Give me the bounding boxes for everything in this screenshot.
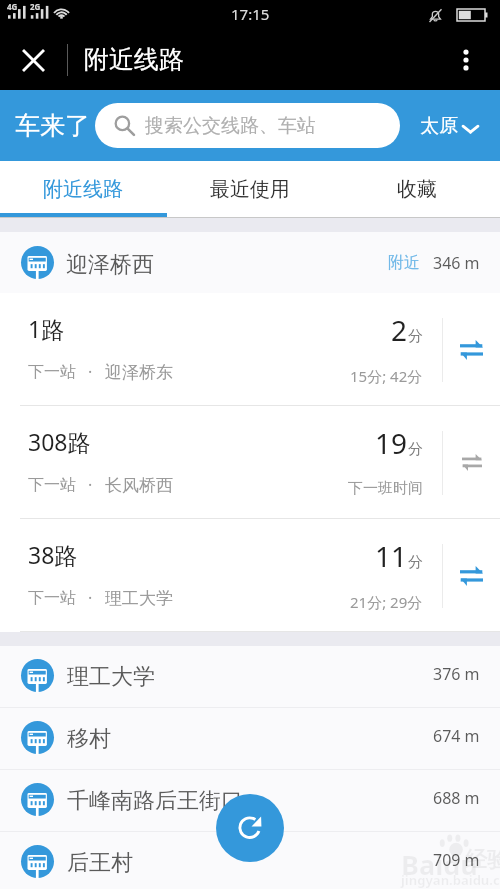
staticText: 太原 [420,114,458,138]
staticText: 后王村 [67,849,133,877]
staticText: 搜索公交线路、车站 [145,114,316,138]
staticText: 下一站 [28,362,76,382]
staticText: 709 m [433,849,480,871]
staticText: 308路 [28,426,91,457]
staticText: 2 [391,311,408,349]
button[interactable]: More options [444,38,488,82]
staticText: 理工大学 [67,663,155,691]
staticText: 376 m [433,663,480,685]
button[interactable]: 308路 [0,406,500,519]
button[interactable]: 38路 [0,519,500,632]
button[interactable]: 后王村 [0,832,500,889]
button[interactable]: 收藏 [333,161,500,217]
staticText: 长风桥西 [105,475,173,496]
button[interactable]: 1路 [0,293,500,406]
staticText: 收藏 [397,177,437,202]
staticText: 理工大学 [105,588,173,609]
staticText: 38路 [28,539,78,570]
staticText: 迎泽桥西 [66,251,154,279]
staticText: 11 [375,537,408,575]
button[interactable]: 附近线路 [0,161,166,217]
button[interactable]: 搜索公交线路、车站 [95,103,400,148]
button[interactable]: 迎泽桥西 [0,232,500,293]
button[interactable]: Close [11,38,56,83]
staticText: 车来了 [15,110,90,141]
staticText: 经验 [465,846,500,874]
staticText: 21分; 29分 [350,592,423,612]
staticText: 下一站 [28,588,76,608]
staticText: 分 [408,327,423,346]
staticText: 最近使用 [210,177,290,202]
staticText: 2G [30,1,41,12]
button[interactable]: Switch direction [443,406,500,519]
staticText: 迎泽桥东 [105,362,173,383]
staticText: · [88,587,93,609]
staticText: 下一班时间 [348,479,423,498]
button[interactable]: 理工大学 [0,646,500,708]
staticText: · [88,474,93,496]
button[interactable]: 千峰南路后王街口 [0,770,500,832]
staticText: 分 [408,440,423,459]
staticText: 19 [375,424,408,462]
staticText: 688 m [433,787,480,809]
staticText: 4G [7,1,18,12]
staticText: 346 m [433,252,480,274]
staticText: 附近 [388,253,420,273]
button[interactable]: Switch direction [443,293,500,406]
staticText: 15分; 42分 [350,366,423,386]
staticText: 1路 [28,313,65,344]
staticText: jingyan.baidu.com [401,871,500,889]
staticText: 附近线路 [43,177,123,202]
staticText: Baidu [401,846,478,883]
staticText: 千峰南路后王街口 [67,787,243,815]
button[interactable]: 最近使用 [166,161,333,217]
staticText: · [88,361,93,383]
button[interactable]: 移村 [0,708,500,770]
staticText: 移村 [67,725,111,753]
staticText: 分 [408,553,423,572]
staticText: 附近线路 [84,44,184,75]
staticText: 下一站 [28,475,76,495]
staticText: 17:15 [231,4,270,24]
button[interactable]: Refresh [216,794,284,862]
button[interactable]: Switch direction [443,519,500,632]
staticText: 674 m [433,725,480,747]
button[interactable]: 太原 [420,114,479,138]
